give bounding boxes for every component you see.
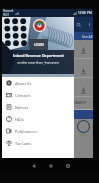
staticText: FAQs <box>80 133 88 137</box>
staticText: LOGIN <box>34 43 44 47</box>
button[interactable]: Contacts <box>2 89 74 101</box>
button[interactable]: More options <box>86 17 92 32</box>
button[interactable]: Back <box>30 162 38 170</box>
staticText: Network <box>3 9 14 13</box>
staticText: Tax Laws <box>15 141 31 146</box>
staticText: See All <box>82 34 93 39</box>
staticText: FAQs <box>15 117 25 122</box>
button[interactable]: FAQs <box>2 113 74 125</box>
button[interactable]: See All <box>74 32 93 40</box>
staticText: Contacts <box>15 93 31 98</box>
button[interactable]: Tax Laws <box>2 137 74 149</box>
staticText: Notices <box>15 105 29 110</box>
staticText: Inland Revenue Department <box>13 53 64 58</box>
button[interactable]: Home <box>47 162 55 170</box>
button[interactable]: Recent apps <box>64 162 72 170</box>
staticText: 12:56 PM <box>78 11 92 15</box>
button[interactable]: Download <box>74 78 93 97</box>
button[interactable]: About Us <box>2 77 74 89</box>
staticText: 9631 <box>3 13 9 17</box>
staticText: About Us <box>15 81 32 86</box>
staticText: SEARCH <box>74 101 86 105</box>
button[interactable]: Search <box>74 17 82 32</box>
staticText: Publications <box>15 129 37 134</box>
button[interactable]: Notices <box>2 101 74 113</box>
staticText: आन्तरिक राजस्व विभाग ,नेपाल सरकार <box>5 61 71 65</box>
button[interactable]: Publications <box>2 125 74 137</box>
button[interactable]: LOGIN <box>29 39 48 50</box>
button[interactable]: Download <box>74 40 93 59</box>
button[interactable]: Download <box>74 59 93 78</box>
